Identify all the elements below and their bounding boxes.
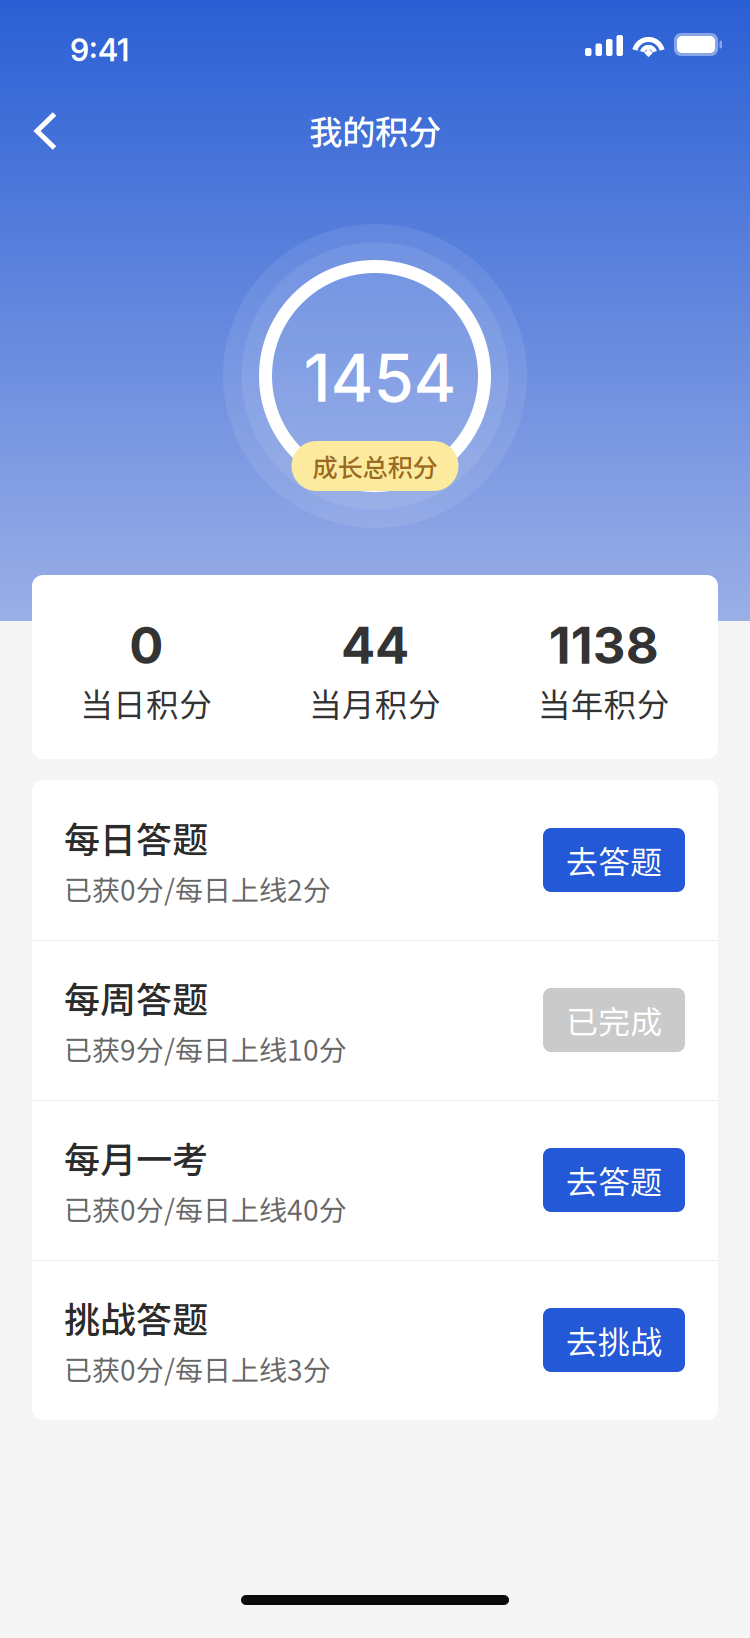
staticText: 成长总积分 [312, 448, 437, 484]
staticText: 44 [341, 615, 409, 676]
button[interactable]: 挑战答题 [32, 1260, 718, 1420]
button[interactable]: 每周答题 [32, 940, 718, 1100]
staticText: 每日答题 [64, 811, 208, 863]
staticText: 0 [129, 615, 163, 676]
staticText: 当年积分 [538, 679, 670, 726]
staticText: 我的积分 [309, 106, 441, 154]
staticText: 每月一考 [64, 1131, 208, 1183]
staticText: 当日积分 [80, 679, 212, 726]
staticText: 已完成 [566, 997, 662, 1043]
staticText: 去答题 [566, 837, 662, 883]
button[interactable]: 每月一考 [32, 1100, 718, 1260]
staticText: 已获0分/每日上线40分 [64, 1188, 347, 1229]
staticText: 每周答题 [64, 971, 208, 1023]
button[interactable]: 每日答题 [32, 780, 718, 940]
staticText: 9:41 [70, 31, 129, 68]
staticText: 当月积分 [309, 679, 441, 726]
staticText: 1454 [303, 338, 456, 417]
staticText: 1138 [549, 615, 659, 676]
staticText: 去挑战 [566, 1317, 662, 1363]
staticText: 已获0分/每日上线2分 [64, 868, 331, 909]
staticText: 已获0分/每日上线3分 [64, 1348, 331, 1389]
staticText: 已获9分/每日上线10分 [64, 1028, 347, 1069]
staticText: 去答题 [566, 1157, 662, 1203]
staticText: 挑战答题 [64, 1291, 208, 1343]
button[interactable]: 返回 [15, 95, 83, 177]
